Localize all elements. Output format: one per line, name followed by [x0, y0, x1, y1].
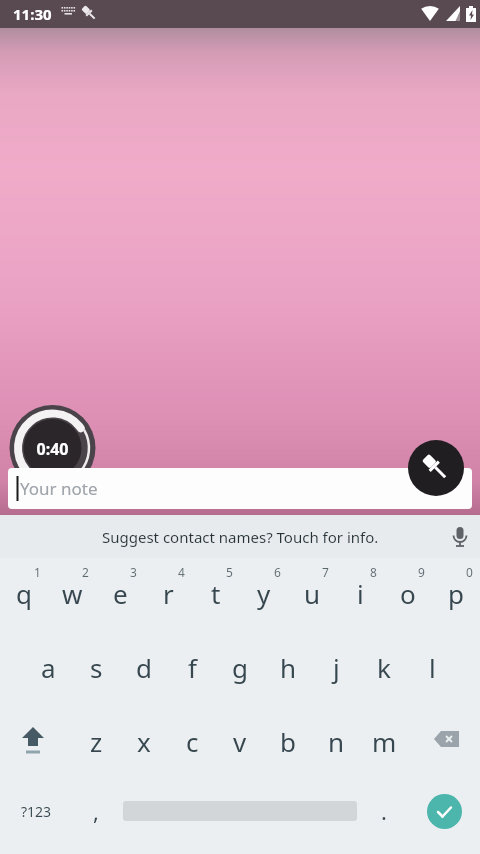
button[interactable]: g — [216, 632, 264, 706]
button[interactable]: Your note — [8, 468, 472, 509]
staticText: l — [429, 650, 436, 685]
staticText: e — [113, 576, 128, 611]
staticText: 0 — [466, 564, 473, 580]
staticText: p — [448, 576, 464, 611]
button[interactable]: b — [264, 706, 312, 780]
staticText: r — [163, 576, 174, 611]
staticText: y — [257, 576, 271, 611]
staticText: x — [137, 724, 151, 759]
button[interactable]: j — [312, 632, 360, 706]
button[interactable]: q — [0, 558, 48, 632]
staticText: , — [93, 796, 99, 826]
button[interactable]: r — [144, 558, 192, 632]
button[interactable]: h — [264, 632, 312, 706]
button[interactable]: f — [168, 632, 216, 706]
button[interactable] — [408, 440, 464, 496]
staticText: m — [372, 724, 397, 759]
staticText: . — [381, 796, 387, 826]
staticText: 7 — [322, 564, 329, 580]
staticText: q — [16, 576, 32, 611]
staticText: 9 — [418, 564, 425, 580]
staticText: 6 — [274, 564, 281, 580]
button[interactable]: , — [72, 780, 120, 854]
staticText: i — [357, 576, 364, 611]
button[interactable]: u — [288, 558, 336, 632]
button[interactable] — [408, 706, 480, 780]
button[interactable] — [0, 706, 72, 780]
staticText: 4 — [178, 564, 185, 580]
staticText: 8 — [370, 564, 377, 580]
staticText: s — [90, 650, 103, 685]
button[interactable]: o — [384, 558, 432, 632]
staticText: d — [136, 650, 152, 685]
staticText: k — [377, 650, 391, 685]
button[interactable]: z — [72, 706, 120, 780]
staticText: 2 — [82, 564, 89, 580]
staticText: u — [304, 576, 321, 611]
button[interactable] — [120, 780, 360, 854]
staticText: ?123 — [21, 802, 52, 821]
staticText: f — [188, 650, 197, 685]
button[interactable]: y — [240, 558, 288, 632]
staticText: z — [90, 724, 103, 759]
staticText: o — [400, 576, 416, 611]
staticText: a — [41, 650, 56, 685]
staticText: g — [232, 650, 248, 685]
button[interactable] — [427, 794, 462, 829]
button[interactable]: m — [360, 706, 408, 780]
button[interactable]: ?123 — [0, 780, 72, 854]
staticText: b — [280, 724, 296, 759]
button[interactable]: c — [168, 706, 216, 780]
staticText: 3 — [130, 564, 137, 580]
button[interactable]: . — [360, 780, 408, 854]
button[interactable]: i — [336, 558, 384, 632]
button[interactable]: t — [192, 558, 240, 632]
staticText: 0:40 — [3, 438, 102, 460]
staticText: v — [233, 724, 247, 759]
staticText: n — [328, 724, 345, 759]
staticText: 11:30 — [13, 4, 52, 24]
button[interactable]: d — [120, 632, 168, 706]
staticText: c — [186, 724, 199, 759]
button[interactable]: e — [96, 558, 144, 632]
button[interactable]: Suggest contact names? Touch for info. — [0, 515, 480, 558]
staticText: j — [333, 650, 340, 685]
button[interactable]: k — [360, 632, 408, 706]
staticText: Your note — [20, 477, 98, 500]
staticText: w — [62, 576, 83, 611]
button[interactable]: a — [24, 632, 72, 706]
staticText: 1 — [34, 564, 41, 580]
button[interactable]: v — [216, 706, 264, 780]
staticText: t — [211, 576, 221, 611]
button[interactable]: l — [408, 632, 456, 706]
button[interactable]: x — [120, 706, 168, 780]
staticText: h — [280, 650, 297, 685]
button[interactable]: w — [48, 558, 96, 632]
button[interactable]: p — [432, 558, 480, 632]
staticText: Suggest contact names? Touch for info. — [102, 527, 379, 547]
button[interactable]: n — [312, 706, 360, 780]
button[interactable]: s — [72, 632, 120, 706]
staticText: 5 — [226, 564, 233, 580]
